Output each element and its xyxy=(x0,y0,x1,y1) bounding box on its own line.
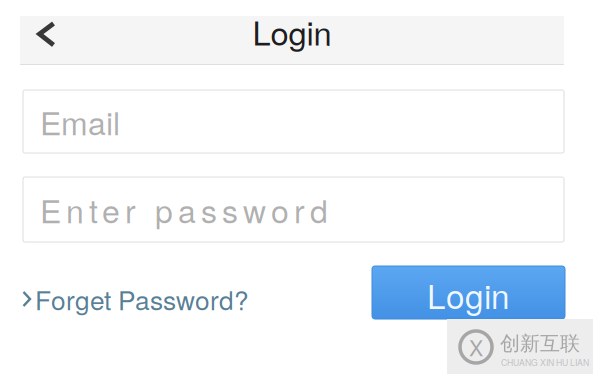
staticText: Enter password xyxy=(40,187,328,232)
staticText: X xyxy=(469,332,483,362)
button[interactable]: Login xyxy=(372,266,565,319)
staticText: CHUANG XIN HU LIAN xyxy=(501,356,589,368)
button[interactable]: Forget Password? xyxy=(22,282,249,316)
staticText: 创新互联 xyxy=(500,331,580,356)
staticText: Forget Password? xyxy=(35,280,249,318)
staticText: Login xyxy=(427,271,510,318)
button[interactable]: Back xyxy=(20,16,82,65)
staticText: Login xyxy=(252,8,331,55)
staticText: Email xyxy=(40,99,120,144)
